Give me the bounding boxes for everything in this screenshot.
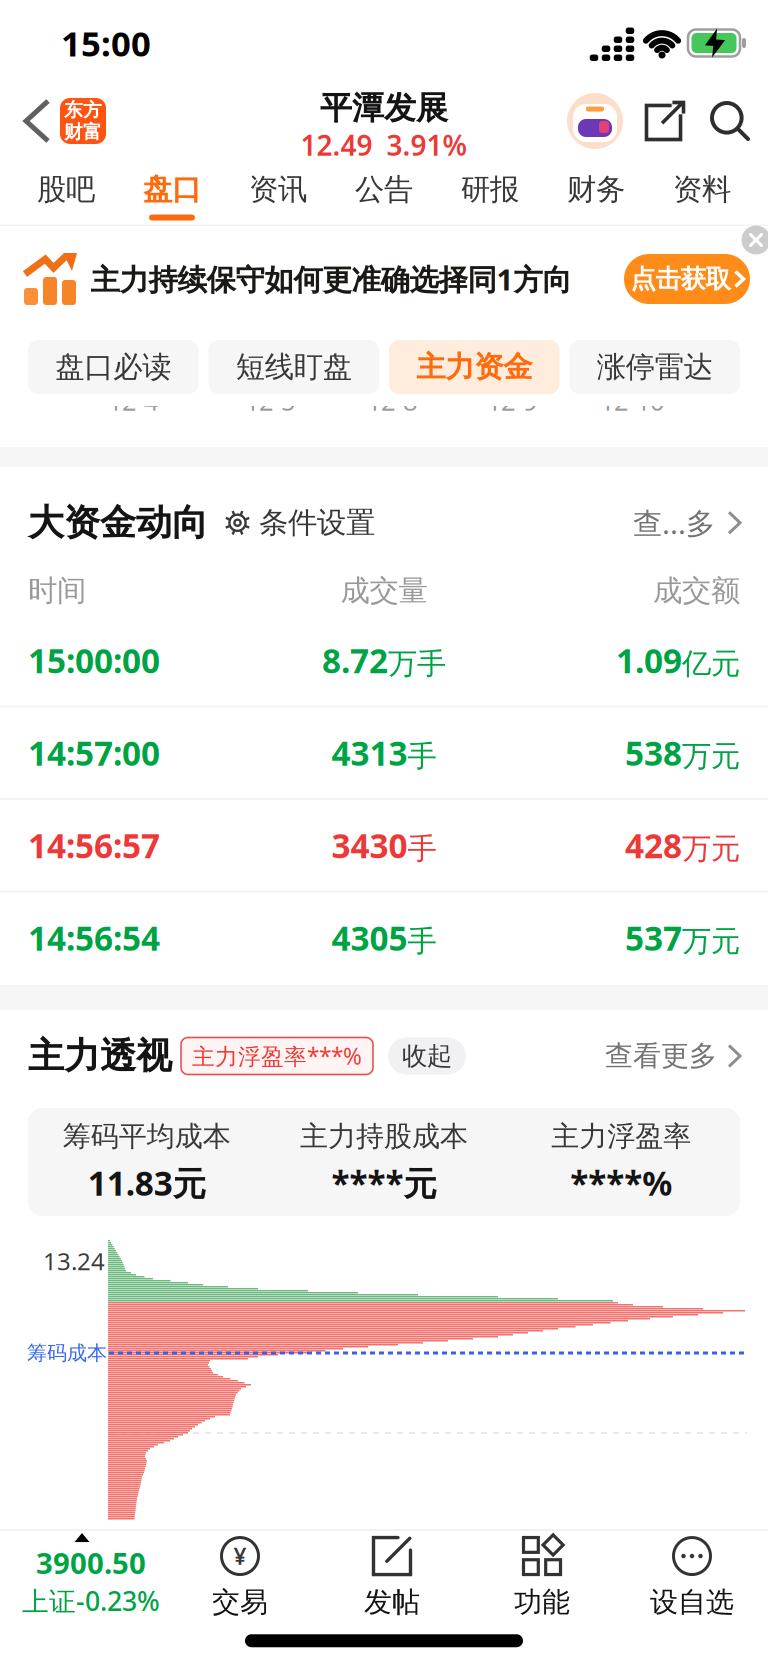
staticText: 涨停雷达	[597, 349, 713, 385]
button[interactable]: Share	[646, 102, 683, 139]
staticText: 12-9	[487, 384, 537, 418]
staticText: 主力浮盈率	[551, 1119, 691, 1154]
staticText: 主力透视	[28, 1034, 172, 1078]
button[interactable]: 点击获取	[624, 254, 750, 304]
staticText: 设自选	[650, 1585, 734, 1619]
staticText: 盘口必读	[55, 349, 171, 385]
staticText: 12-10	[600, 384, 664, 418]
button[interactable]: 发帖	[364, 1536, 420, 1619]
staticText: 11.83元	[88, 1161, 206, 1205]
button[interactable]: 财务	[543, 171, 649, 220]
staticText: 4313手	[331, 731, 436, 775]
staticText: 发帖	[364, 1585, 420, 1619]
staticText: 资料	[673, 171, 731, 207]
button[interactable]: 东方财富	[60, 98, 106, 144]
staticText: 股吧	[37, 171, 95, 207]
staticText: 3430手	[331, 823, 436, 867]
staticText: 东方	[64, 99, 102, 121]
staticText: 主力持续保守如何更准确选择同1方向	[90, 259, 571, 298]
button[interactable]: 股吧	[13, 171, 119, 220]
staticText: 筹码成本	[27, 1341, 107, 1365]
staticText: 12-8	[367, 384, 417, 418]
button[interactable]: 盘口	[119, 171, 225, 220]
staticText: 筹码平均成本	[63, 1119, 231, 1154]
staticText: 14:57:00	[28, 731, 160, 775]
button[interactable]: 涨停雷达	[569, 340, 740, 394]
staticText: 1.09亿元	[616, 638, 740, 682]
staticText: 8.72万手	[322, 638, 446, 682]
staticText: 14:56:54	[28, 916, 160, 960]
button[interactable]: 智能助手	[566, 92, 624, 150]
staticText: 428万元	[625, 823, 740, 867]
staticText: 公告	[355, 171, 413, 207]
button[interactable]: 公告	[331, 171, 437, 220]
staticText: 条件设置	[259, 505, 375, 541]
staticText: 财富	[64, 120, 102, 143]
staticText: 538万元	[625, 731, 740, 775]
button[interactable]: 盘口必读	[28, 340, 198, 394]
staticText: ¥	[233, 1541, 246, 1571]
button[interactable]: 设自选	[650, 1536, 734, 1619]
staticText: 上证-0.23%	[22, 1583, 160, 1618]
button[interactable]: 条件设置	[224, 505, 375, 541]
button[interactable]: 短线盯盘	[208, 340, 379, 394]
staticText: 4305手	[331, 916, 436, 960]
staticText: 查看更多	[605, 1039, 717, 1073]
staticText: 13.24	[43, 1245, 105, 1277]
button[interactable]: 主力资金	[389, 340, 559, 394]
button[interactable]: 研报	[437, 171, 543, 220]
staticText: 平潭发展	[320, 88, 448, 128]
button[interactable]: Close	[741, 225, 768, 254]
staticText: 查...多	[633, 503, 715, 542]
button[interactable]: 3900.50	[22, 1533, 160, 1618]
button[interactable]: 资讯	[225, 171, 331, 220]
staticText: ****元	[331, 1161, 436, 1205]
button[interactable]: ¥	[212, 1536, 268, 1619]
button[interactable]: Back	[26, 101, 48, 141]
staticText: 主力浮盈率***%	[192, 1041, 362, 1071]
staticText: 12-5	[245, 384, 295, 418]
staticText: 15:00:00	[28, 638, 160, 682]
staticText: 15:00	[61, 20, 151, 66]
staticText: 主力持股成本	[300, 1119, 468, 1154]
staticText: 交易	[212, 1585, 268, 1619]
button[interactable]: Search	[710, 101, 750, 141]
button[interactable]: 收起	[388, 1037, 466, 1074]
staticText: 时间	[28, 573, 86, 609]
staticText: ****%	[570, 1161, 672, 1205]
staticText: 成交额	[653, 573, 740, 609]
staticText: 12-4	[108, 384, 158, 418]
staticText: 盘口	[143, 171, 201, 207]
staticText: 收起	[402, 1040, 452, 1071]
staticText: 研报	[461, 171, 519, 207]
staticText: 点击获取	[630, 263, 730, 294]
staticText: 12.49 3.91%	[300, 126, 467, 164]
staticText: 主力资金	[416, 349, 532, 385]
staticText: 功能	[514, 1585, 570, 1619]
button[interactable]: 功能	[514, 1536, 570, 1619]
button[interactable]: 查看更多	[605, 1039, 740, 1073]
staticText: 短线盯盘	[236, 349, 352, 385]
staticText: 537万元	[625, 916, 740, 960]
button[interactable]: 查...多	[633, 503, 740, 542]
staticText: 大资金动向	[28, 501, 208, 545]
staticText: 14:56:57	[28, 823, 160, 867]
button[interactable]: 资料	[649, 171, 755, 220]
staticText: 成交量	[340, 573, 427, 609]
staticText: 3900.50	[36, 1543, 146, 1582]
staticText: 财务	[567, 171, 625, 207]
staticText: 资讯	[249, 171, 307, 207]
